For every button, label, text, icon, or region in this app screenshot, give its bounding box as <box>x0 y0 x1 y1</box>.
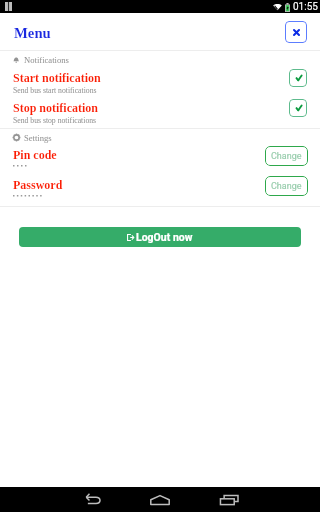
button[interactable]: Home <box>140 487 180 512</box>
button[interactable]: Password <box>0 176 320 206</box>
button[interactable]: Stop notification <box>0 98 320 128</box>
button[interactable]: Start notification <box>0 68 320 98</box>
staticText: Stop notification <box>13 101 99 114</box>
button[interactable]: Close <box>285 21 307 43</box>
staticText: Pin code <box>13 148 57 161</box>
button[interactable]: Change <box>265 176 308 196</box>
button[interactable]: Change <box>265 146 308 166</box>
staticText: Start notification <box>13 71 101 84</box>
staticText: Notifications <box>24 55 69 65</box>
staticText: Menu <box>14 25 51 41</box>
staticText: LogOut now <box>136 231 193 243</box>
staticText: Password <box>13 178 63 191</box>
button[interactable]: Start notification <box>289 69 307 87</box>
staticText: 01:55 <box>293 1 318 13</box>
staticText: Change <box>271 151 302 162</box>
button[interactable]: LogOut now <box>19 227 301 247</box>
staticText: Settings <box>24 133 52 143</box>
staticText: Change <box>271 181 302 192</box>
button[interactable]: Stop notification <box>289 99 307 117</box>
button[interactable]: Back <box>72 487 112 512</box>
button[interactable]: Pin code <box>0 146 320 176</box>
staticText: Send bus start notifications <box>13 86 97 95</box>
staticText: Send bus stop notifications <box>13 116 97 125</box>
button[interactable]: Recents <box>209 487 249 512</box>
